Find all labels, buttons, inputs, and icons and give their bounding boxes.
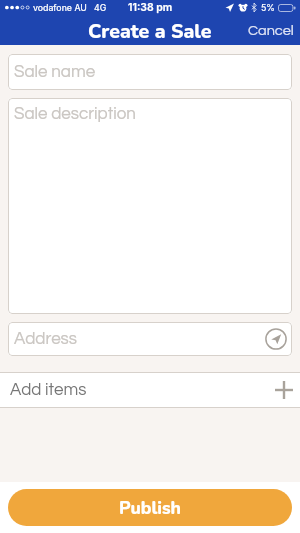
button[interactable]: Sale description [8, 98, 292, 314]
other: Use current location [265, 328, 287, 350]
button[interactable]: Publish [8, 489, 292, 526]
button[interactable]: Cancel [245, 21, 297, 40]
staticText: Sale name [14, 63, 96, 81]
staticText: Cancel [248, 23, 294, 38]
staticText: Address [14, 330, 77, 348]
button[interactable]: Address [8, 322, 292, 356]
staticText: 5% [261, 2, 275, 13]
staticText: vodafone AU [33, 2, 87, 13]
staticText: 11:38 pm [128, 1, 173, 14]
button[interactable]: Add items [0, 372, 300, 408]
staticText: Add items [10, 381, 87, 399]
staticText: 4G [94, 2, 107, 13]
staticText: Publish [119, 496, 182, 520]
staticText: Create a Sale [88, 18, 212, 45]
other: Add item [275, 381, 293, 399]
staticText: Sale description [14, 105, 136, 123]
button[interactable]: Sale name [8, 54, 292, 90]
